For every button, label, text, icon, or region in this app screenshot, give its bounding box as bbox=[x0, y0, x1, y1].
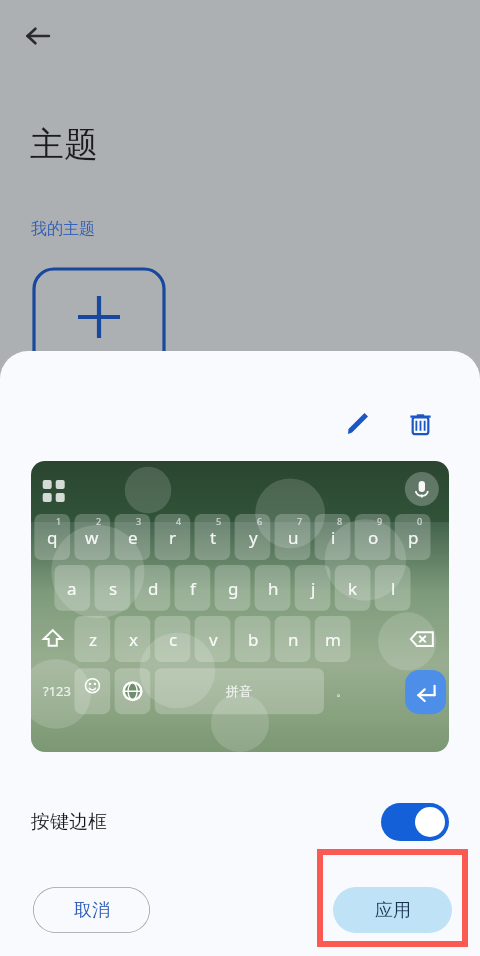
staticText: y bbox=[249, 526, 258, 549]
staticText: e bbox=[128, 526, 138, 549]
staticText: u bbox=[288, 526, 299, 549]
staticText: 0 bbox=[417, 515, 423, 527]
staticText: 8 bbox=[337, 515, 343, 527]
staticText: 取消 bbox=[74, 899, 110, 922]
staticText: m bbox=[325, 628, 341, 651]
button[interactable]: Add theme bbox=[34, 269, 164, 365]
staticText: r bbox=[169, 526, 177, 549]
staticText: a bbox=[67, 577, 77, 600]
staticText: o bbox=[368, 526, 379, 549]
staticText: n bbox=[288, 628, 299, 651]
staticText: 9 bbox=[377, 515, 383, 527]
button[interactable]: 取消 bbox=[33, 887, 150, 933]
staticText: s bbox=[109, 577, 118, 600]
button[interactable]: Back bbox=[14, 12, 62, 60]
staticText: 我的主题 bbox=[31, 219, 95, 239]
staticText: d bbox=[148, 577, 159, 600]
staticText: i bbox=[331, 526, 336, 549]
staticText: h bbox=[268, 577, 279, 600]
staticText: g bbox=[228, 577, 239, 600]
button[interactable]: q bbox=[31, 461, 449, 752]
staticText: 拼音 bbox=[226, 683, 252, 699]
staticText: ?123 bbox=[43, 682, 71, 700]
staticText: 7 bbox=[297, 515, 303, 527]
staticText: 2 bbox=[96, 515, 102, 527]
staticText: k bbox=[348, 577, 358, 600]
staticText: 3 bbox=[136, 515, 142, 527]
staticText: 6 bbox=[257, 515, 263, 527]
staticText: 1 bbox=[56, 515, 62, 527]
staticText: c bbox=[169, 628, 178, 651]
button[interactable]: 应用 bbox=[333, 887, 452, 933]
staticText: x bbox=[129, 628, 138, 651]
staticText: p bbox=[408, 526, 419, 549]
staticText: z bbox=[89, 628, 97, 651]
button[interactable]: Delete bbox=[398, 401, 442, 445]
staticText: 4 bbox=[176, 515, 182, 527]
staticText: 5 bbox=[216, 515, 222, 527]
staticText: l bbox=[391, 577, 396, 600]
staticText: 应用 bbox=[375, 899, 411, 922]
staticText: 按键边框 bbox=[31, 810, 107, 834]
button[interactable]: 按键边框 bbox=[31, 800, 449, 844]
staticText: 主题 bbox=[30, 123, 98, 166]
staticText: 。 bbox=[336, 684, 348, 699]
staticText: b bbox=[248, 628, 259, 651]
staticText: v bbox=[209, 628, 218, 651]
staticText: j bbox=[311, 577, 316, 600]
staticText: w bbox=[85, 526, 99, 549]
staticText: q bbox=[47, 526, 58, 549]
button[interactable]: Edit bbox=[336, 401, 380, 445]
staticText: f bbox=[190, 577, 196, 600]
staticText: t bbox=[210, 526, 217, 549]
